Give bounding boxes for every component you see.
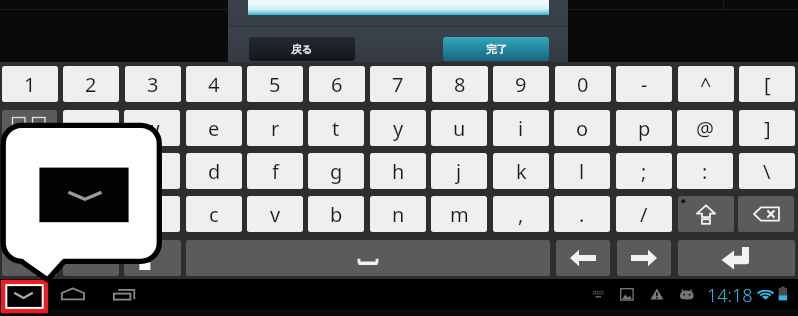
button[interactable]: @ <box>677 110 733 146</box>
staticText: s <box>147 158 157 185</box>
staticText: m <box>450 201 469 228</box>
button[interactable]: ] <box>739 110 795 146</box>
button[interactable]: l <box>554 153 610 189</box>
button[interactable]: v <box>247 196 303 232</box>
button[interactable]: Home <box>58 284 88 304</box>
button[interactable]: ^ <box>678 66 734 102</box>
button[interactable]: [ <box>739 66 795 102</box>
button[interactable]: 8 <box>432 66 488 102</box>
button[interactable]: m <box>431 196 487 232</box>
staticText: v <box>270 201 281 228</box>
button[interactable]: n <box>370 196 426 232</box>
staticText: , <box>518 201 524 228</box>
button[interactable]: Cursor left <box>556 240 610 276</box>
staticText: t <box>332 115 340 142</box>
button[interactable]: 3 <box>125 66 181 102</box>
staticText: i <box>518 115 524 142</box>
staticText: d <box>208 158 221 185</box>
staticText: 5 <box>269 71 281 98</box>
button[interactable]: Recent apps <box>110 284 140 304</box>
staticText: w <box>144 115 160 142</box>
staticText: - <box>641 71 648 98</box>
button[interactable]: i <box>493 110 549 146</box>
button[interactable]: e <box>186 110 242 146</box>
staticText: f <box>272 158 279 185</box>
button[interactable]: t <box>308 110 364 146</box>
button[interactable]: p <box>616 110 672 146</box>
button[interactable]: Shift <box>678 196 734 232</box>
button[interactable]: 2 <box>63 66 119 102</box>
staticText: ^ <box>700 71 712 98</box>
staticText: a <box>85 158 97 185</box>
button[interactable]: h <box>370 153 426 189</box>
button[interactable]: f <box>247 153 303 189</box>
staticText: b <box>330 201 343 228</box>
button[interactable]: w <box>124 110 180 146</box>
button[interactable]: . <box>554 196 610 232</box>
button[interactable]: s <box>124 153 180 189</box>
staticText: h <box>392 158 405 185</box>
button[interactable]: Key <box>2 153 57 189</box>
staticText: 4 <box>208 71 220 98</box>
staticText: 8 <box>454 71 466 98</box>
staticText: 7 <box>392 71 404 98</box>
button[interactable]: b <box>308 196 364 232</box>
button[interactable]: Enter <box>678 240 795 276</box>
button[interactable]: d <box>186 153 242 189</box>
button[interactable]: Space <box>186 240 550 276</box>
staticText: 戻る <box>291 43 313 56</box>
button[interactable]: 完了 <box>443 37 549 61</box>
button[interactable]: Hide keyboard <box>4 283 45 309</box>
button[interactable]: c <box>186 196 242 232</box>
button[interactable]: Key <box>2 240 57 276</box>
button[interactable]: \ <box>739 153 795 189</box>
staticText: g <box>330 158 343 185</box>
button[interactable]: 0 <box>555 66 611 102</box>
staticText: n <box>392 201 405 228</box>
button[interactable]: - <box>616 66 672 102</box>
staticText: p <box>638 115 651 142</box>
button[interactable]: 4 <box>186 66 242 102</box>
button[interactable]: , <box>493 196 549 232</box>
button[interactable]: 7 <box>370 66 426 102</box>
button[interactable]: u <box>431 110 487 146</box>
button[interactable]: a <box>63 153 119 189</box>
staticText: 2 <box>85 71 97 98</box>
button[interactable]: Key <box>2 196 57 232</box>
button[interactable]: Backspace <box>738 196 794 232</box>
staticText: k <box>516 158 527 185</box>
staticText: x <box>147 201 158 228</box>
staticText: j <box>456 158 462 185</box>
staticText: ] <box>764 115 771 142</box>
button[interactable]: 9 <box>493 66 549 102</box>
button[interactable]: 5 <box>247 66 303 102</box>
staticText: q <box>85 115 98 142</box>
button[interactable]: : <box>677 153 733 189</box>
staticText: : <box>702 158 708 185</box>
button[interactable]: 1 <box>2 66 58 102</box>
button[interactable]: j <box>431 153 487 189</box>
button[interactable]: y <box>370 110 426 146</box>
button[interactable]: o <box>554 110 610 146</box>
button[interactable]: g <box>308 153 364 189</box>
staticText: [ <box>764 71 771 98</box>
staticText: l <box>579 158 585 185</box>
button[interactable]: Switch input method <box>2 110 57 146</box>
staticText: y <box>393 115 404 142</box>
button[interactable]: r <box>247 110 303 146</box>
button[interactable]: 6 <box>309 66 365 102</box>
button[interactable]: 戻る <box>249 37 355 61</box>
button[interactable]: Cursor right <box>617 240 671 276</box>
button[interactable]: ; <box>616 153 672 189</box>
button[interactable]: x <box>124 196 180 232</box>
button[interactable]: / <box>616 196 672 232</box>
staticText: 0 <box>577 71 589 98</box>
button[interactable]: Key <box>124 240 181 276</box>
staticText: 完了 <box>486 43 507 56</box>
staticText: z <box>86 201 96 228</box>
button[interactable]: Key <box>63 240 119 276</box>
button[interactable]: z <box>63 196 119 232</box>
button[interactable]: k <box>493 153 549 189</box>
staticText: r <box>271 115 280 142</box>
button[interactable]: q <box>63 110 119 146</box>
